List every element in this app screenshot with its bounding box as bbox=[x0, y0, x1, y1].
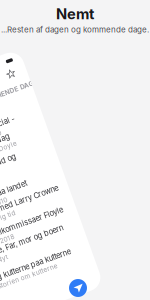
staticText: Storge, Far, mor og boern bbox=[0, 239, 46, 248]
button[interactable]: Mord med paad og bbox=[0, 156, 56, 174]
button[interactable]: Kriminalkommissaer Floyle bbox=[0, 222, 56, 240]
staticText: Nemt bbox=[56, 5, 94, 23]
staticText: RESTEN AF DAGEN OG KOMMENDE DAGE bbox=[0, 94, 71, 102]
button[interactable]: Hverdag paa landet bbox=[0, 185, 56, 203]
button[interactable]: Hitmageren - Special - bbox=[0, 120, 56, 138]
staticText: ...Resten af dagen og kommende dage. bbox=[1, 25, 149, 34]
staticText: Hitmageren - Special - bbox=[0, 120, 37, 129]
button[interactable]: Komedie med Larry Crowne bbox=[0, 200, 56, 218]
staticText: Mord med paad og bbox=[0, 156, 26, 165]
button[interactable]: Den seneste onsdag bbox=[0, 135, 56, 153]
button[interactable]: Storge, Far, mor og boern bbox=[0, 239, 56, 257]
staticText: Historien om kutterne bbox=[0, 274, 28, 282]
staticText: TV 2 i dag kl. 20.00 bbox=[0, 130, 20, 138]
staticText: Sir Arthur Conan Doyle bbox=[0, 145, 31, 153]
staticText: Kriminalkommissaer Floyle bbox=[0, 222, 52, 231]
staticText: Hverdag paa landet bbox=[0, 185, 27, 194]
button[interactable]: Bag kutterne paa kutterne bbox=[0, 264, 56, 282]
staticText: Komedie med Larry Crowne bbox=[0, 200, 55, 209]
staticText: Komedie 2010 bbox=[0, 195, 3, 203]
staticText: TV3 Til evig tid bbox=[0, 210, 6, 218]
staticText: Bag kutterne paa kutterne bbox=[0, 264, 45, 273]
staticText: Den seneste onsdag bbox=[0, 135, 27, 144]
button[interactable]: Ny besked bbox=[69, 279, 87, 297]
